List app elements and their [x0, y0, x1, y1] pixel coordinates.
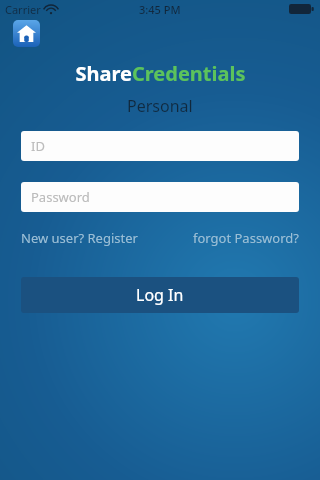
- staticText: ShareCredentials: [75, 60, 246, 87]
- staticText: New user? Register: [21, 229, 138, 247]
- button[interactable]: ID: [21, 131, 299, 161]
- staticText: ID: [31, 137, 45, 155]
- staticText: Password: [31, 188, 90, 206]
- staticText: Log In: [136, 284, 184, 306]
- staticText: 3:45 PM: [139, 2, 181, 17]
- button[interactable]: forgot Password?: [193, 227, 299, 249]
- staticText: forgot Password?: [193, 229, 299, 247]
- button[interactable]: Password: [21, 182, 299, 212]
- staticText: Personal: [127, 95, 193, 117]
- button[interactable]: New user? Register: [21, 227, 138, 249]
- staticText: Carrier: [5, 2, 41, 17]
- button[interactable]: Log In: [21, 277, 299, 313]
- button[interactable]: Home: [13, 20, 40, 47]
